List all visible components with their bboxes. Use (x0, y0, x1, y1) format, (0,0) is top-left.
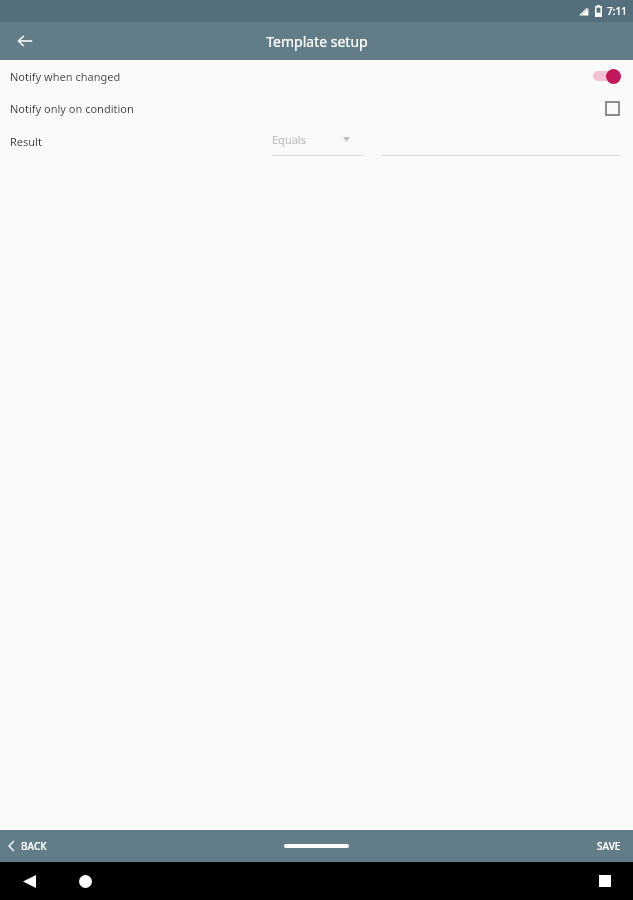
staticText: Notify when changed (10, 69, 121, 84)
staticText: 7:11 (607, 4, 627, 18)
button[interactable]: Equals (272, 126, 363, 156)
button[interactable]: Notify only on condition (0, 92, 633, 124)
button[interactable]: Back (14, 866, 44, 896)
button[interactable]: Notify when changed (0, 60, 633, 92)
staticText: Result (10, 134, 42, 149)
button[interactable]: Home (70, 866, 100, 896)
staticText: Equals (272, 132, 306, 147)
button[interactable] (382, 126, 620, 156)
button[interactable]: BACK (0, 830, 59, 862)
button[interactable]: Notify when changed toggle (591, 66, 625, 86)
staticText: Template setup (266, 32, 368, 51)
button[interactable]: Recent apps (590, 866, 620, 896)
staticText: SAVE (597, 839, 621, 853)
staticText: BACK (21, 839, 47, 853)
button[interactable]: Back (9, 25, 41, 57)
staticText: Notify only on condition (10, 101, 134, 116)
button[interactable]: SAVE (585, 830, 633, 862)
button[interactable]: Notify only on condition checkbox (602, 98, 622, 118)
